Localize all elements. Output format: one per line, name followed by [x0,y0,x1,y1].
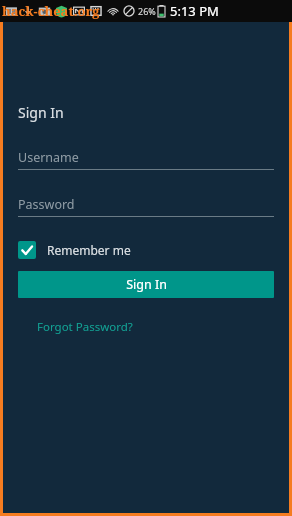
staticText: Password [18,196,75,213]
button[interactable]: Remember me [18,239,137,261]
staticText: hack-cheat.org [2,2,100,20]
staticText: 5:13 PM [170,2,219,20]
staticText: Remember me [47,242,131,258]
button[interactable]: Sign In [18,271,274,298]
staticText: Username [18,149,79,166]
button[interactable]: Username [18,149,274,170]
staticText: Sign In [126,276,167,293]
staticText: Sign In [18,103,64,122]
staticText: Forgot Password? [37,319,133,335]
staticText: 26% [138,5,156,17]
button[interactable]: Forgot Password? [35,316,135,338]
button[interactable]: Password [18,196,274,217]
